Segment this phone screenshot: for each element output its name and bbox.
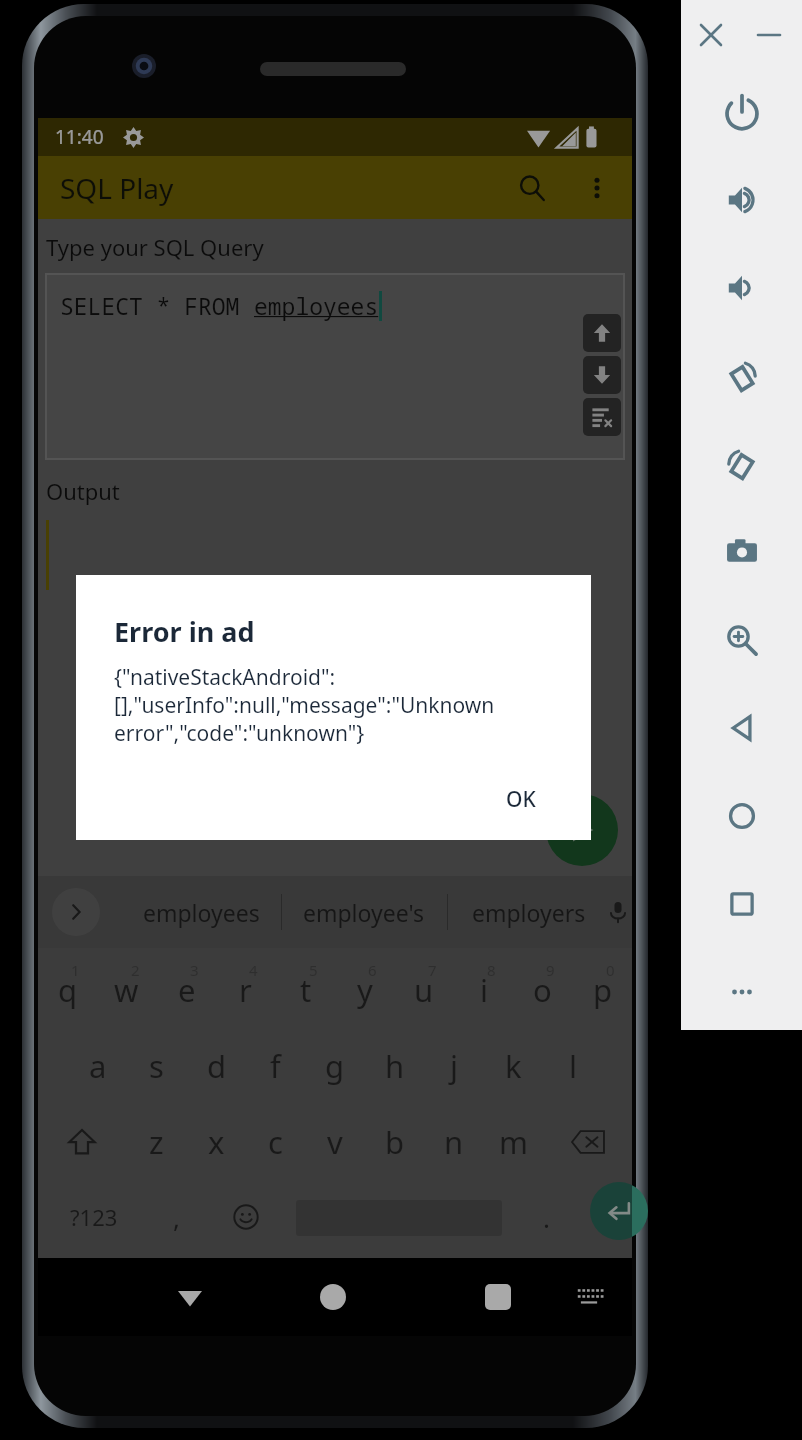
- button[interactable]: c: [246, 1104, 305, 1180]
- button[interactable]: Close: [681, 10, 741, 60]
- staticText: SQL Play: [60, 169, 174, 207]
- staticText: z: [149, 1121, 164, 1163]
- button[interactable]: w: [97, 952, 156, 1028]
- button[interactable]: More options: [572, 163, 622, 213]
- button[interactable]: f: [246, 1028, 305, 1104]
- staticText: {"nativeStackAndroid": [],"userInfo":nul…: [114, 663, 554, 747]
- button[interactable]: More suggestions: [52, 888, 100, 936]
- button[interactable]: g: [305, 1028, 364, 1104]
- staticText: 6: [368, 960, 377, 980]
- staticText: Output: [46, 476, 120, 506]
- staticText: 7: [428, 960, 437, 980]
- staticText: s: [149, 1045, 164, 1087]
- button[interactable]: Power: [681, 68, 802, 156]
- button[interactable]: t: [276, 952, 335, 1028]
- button[interactable]: SELECT * FROM: [46, 274, 624, 459]
- staticText: 5: [309, 960, 318, 980]
- staticText: l: [569, 1045, 577, 1087]
- staticText: ,: [173, 1200, 180, 1235]
- button[interactable]: h: [365, 1028, 424, 1104]
- button[interactable]: ?123: [48, 1180, 140, 1254]
- staticText: r: [239, 969, 252, 1011]
- button[interactable]: Zoom: [681, 596, 802, 684]
- button[interactable]: k: [484, 1028, 543, 1104]
- button[interactable]: Take screenshot: [681, 508, 802, 596]
- button[interactable]: y: [335, 952, 394, 1028]
- button[interactable]: b: [365, 1104, 424, 1180]
- staticText: y: [357, 969, 373, 1011]
- staticText: v: [327, 1121, 343, 1163]
- button[interactable]: p: [573, 952, 632, 1028]
- button[interactable]: Voice input: [594, 888, 642, 936]
- staticText: employee's: [303, 897, 424, 928]
- staticText: a: [89, 1045, 107, 1087]
- button[interactable]: d: [187, 1028, 246, 1104]
- button[interactable]: Rotate right: [681, 420, 802, 508]
- button[interactable]: employers: [450, 876, 608, 948]
- button[interactable]: r: [216, 952, 275, 1028]
- staticText: t: [300, 969, 312, 1011]
- button[interactable]: Volume down: [681, 244, 802, 332]
- button[interactable]: Scroll down: [583, 356, 621, 394]
- button[interactable]: i: [454, 952, 513, 1028]
- button[interactable]: Run query: [546, 794, 618, 866]
- button[interactable]: Recent apps: [443, 1258, 553, 1336]
- staticText: j: [450, 1045, 458, 1087]
- staticText: 2: [131, 960, 140, 980]
- button[interactable]: Minimize: [739, 10, 799, 60]
- staticText: w: [114, 969, 139, 1011]
- button[interactable]: Scroll up: [583, 314, 621, 352]
- button[interactable]: l: [543, 1028, 602, 1104]
- button[interactable]: employees: [122, 876, 280, 948]
- button[interactable]: s: [127, 1028, 186, 1104]
- button[interactable]: Back: [681, 684, 802, 772]
- button[interactable]: Emoji: [214, 1180, 278, 1254]
- button[interactable]: x: [187, 1104, 246, 1180]
- button[interactable]: Home: [681, 772, 802, 860]
- staticText: o: [533, 969, 552, 1011]
- button[interactable]: More: [681, 948, 802, 1036]
- button[interactable]: Enter: [590, 1182, 648, 1240]
- staticText: p: [593, 969, 613, 1011]
- button[interactable]: j: [424, 1028, 483, 1104]
- button[interactable]: Back: [130, 1258, 250, 1336]
- staticText: 4: [249, 960, 258, 980]
- button[interactable]: Overview: [681, 860, 802, 948]
- button[interactable]: v: [305, 1104, 364, 1180]
- button[interactable]: q: [38, 952, 97, 1028]
- staticText: employees: [143, 897, 260, 928]
- button[interactable]: Volume up: [681, 156, 802, 244]
- button[interactable]: m: [484, 1104, 543, 1180]
- button[interactable]: Rotate left: [681, 332, 802, 420]
- button[interactable]: Home: [273, 1258, 393, 1336]
- button[interactable]: OK: [476, 773, 566, 825]
- staticText: i: [480, 969, 488, 1011]
- button[interactable]: Switch keyboard: [550, 1258, 632, 1336]
- button[interactable]: a: [68, 1028, 127, 1104]
- staticText: ?123: [70, 1202, 118, 1232]
- staticText: k: [505, 1045, 522, 1087]
- staticText: b: [385, 1121, 405, 1163]
- staticText: SELECT * FROM: [60, 290, 254, 321]
- button[interactable]: u: [394, 952, 453, 1028]
- staticText: .: [543, 1200, 550, 1235]
- button[interactable]: Shift: [44, 1104, 120, 1180]
- staticText: 0: [606, 960, 615, 980]
- staticText: q: [58, 969, 78, 1011]
- button[interactable]: e: [157, 952, 216, 1028]
- button[interactable]: Clear query: [583, 398, 621, 436]
- staticText: employees: [254, 290, 379, 321]
- staticText: 1: [71, 960, 80, 980]
- staticText: e: [178, 969, 196, 1011]
- button[interactable]: o: [513, 952, 572, 1028]
- staticText: 3: [190, 960, 199, 980]
- button[interactable]: Backspace: [550, 1104, 626, 1180]
- button[interactable]: Search: [506, 162, 558, 214]
- button[interactable]: z: [127, 1104, 186, 1180]
- staticText: OK: [506, 785, 536, 814]
- button[interactable]: employee's: [284, 876, 442, 948]
- button[interactable]: n: [424, 1104, 483, 1180]
